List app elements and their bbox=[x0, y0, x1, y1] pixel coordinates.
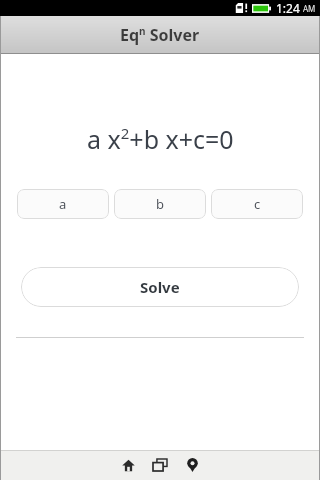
button[interactable]: Home bbox=[117, 454, 139, 476]
staticText: a x2+b x+c=0 bbox=[87, 122, 234, 156]
staticText: AM bbox=[303, 3, 316, 14]
staticText: 1:24 bbox=[276, 0, 300, 16]
staticText: Eqn Solver bbox=[120, 24, 200, 46]
button[interactable]: Location bbox=[181, 454, 203, 476]
staticText: b bbox=[156, 195, 164, 213]
staticText: Solve bbox=[140, 277, 180, 297]
button[interactable]: Solve bbox=[21, 267, 299, 307]
button[interactable]: Recent windows bbox=[149, 454, 171, 476]
staticText: c bbox=[254, 195, 261, 213]
staticText: a bbox=[59, 195, 67, 213]
button[interactable]: a bbox=[17, 189, 109, 219]
button[interactable]: b bbox=[114, 189, 206, 219]
button[interactable]: c bbox=[211, 189, 303, 219]
